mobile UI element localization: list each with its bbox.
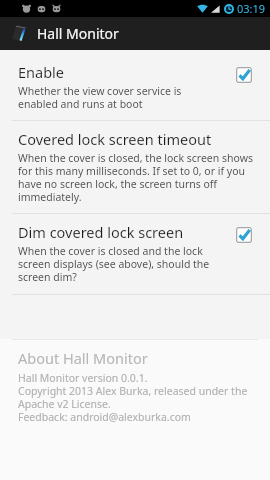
button[interactable]: Hall Monitor, up (11, 24, 125, 43)
staticText: Hall Monitor (37, 24, 119, 43)
button[interactable]: About Hall Monitor (0, 340, 270, 434)
staticText: When the cover is closed and the lock sc… (18, 244, 210, 284)
other: Dim covered lock screen (236, 227, 252, 243)
staticText: Whether the view cover service is enable… (18, 84, 182, 111)
button[interactable] (236, 67, 252, 83)
staticText: About Hall Monitor (18, 348, 148, 368)
staticText: 03:19 (237, 1, 266, 16)
staticText: Hall Monitor version 0.0.1. Copyright 20… (18, 371, 248, 424)
other: Enable (236, 67, 252, 83)
staticText: Dim covered lock screen (18, 222, 184, 242)
staticText: Enable (18, 62, 64, 82)
button[interactable]: Covered lock screen timeout (0, 121, 270, 213)
staticText: When the cover is closed, the lock scree… (18, 151, 253, 204)
button[interactable] (236, 227, 252, 243)
button[interactable]: Enable (0, 56, 270, 120)
button[interactable]: Dim covered lock screen (0, 214, 270, 294)
staticText: Covered lock screen timeout (18, 129, 212, 149)
